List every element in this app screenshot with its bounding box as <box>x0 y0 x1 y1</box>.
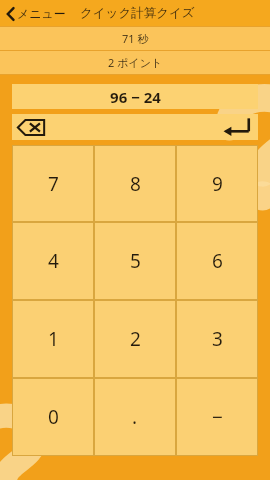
staticText: . <box>132 404 138 430</box>
button[interactable]: 9 <box>177 146 257 221</box>
staticText: クイック計算クイズ <box>80 5 195 21</box>
staticText: 96 − 24 <box>110 87 161 107</box>
button[interactable]: 6 <box>177 223 257 299</box>
staticText: 4 <box>48 248 59 274</box>
staticText: 1 <box>48 326 59 352</box>
button[interactable]: Backspace <box>15 116 47 138</box>
staticText: 8 <box>130 171 141 197</box>
button[interactable]: − <box>177 379 257 455</box>
staticText: 71 秒 <box>122 31 149 46</box>
button[interactable]: . <box>95 379 175 455</box>
staticText: 3 <box>212 326 223 352</box>
staticText: 6 <box>212 248 223 274</box>
button[interactable]: 0 <box>13 379 93 455</box>
staticText: 0 <box>48 404 59 430</box>
button[interactable]: メニュー <box>4 6 68 21</box>
staticText: 7 <box>48 171 59 197</box>
button[interactable]: 5 <box>95 223 175 299</box>
staticText: 5 <box>130 248 141 274</box>
staticText: 9 <box>212 171 223 197</box>
staticText: − <box>212 404 223 430</box>
staticText: メニュー <box>17 6 66 21</box>
button[interactable]: 4 <box>13 223 93 299</box>
staticText: 2 <box>130 326 141 352</box>
button[interactable]: 7 <box>13 146 93 221</box>
button[interactable]: 1 <box>13 301 93 377</box>
button[interactable]: Enter <box>220 115 254 139</box>
button[interactable]: 8 <box>95 146 175 221</box>
button[interactable]: 2 <box>95 301 175 377</box>
button[interactable]: 3 <box>177 301 257 377</box>
staticText: 2 ポイント <box>108 55 163 70</box>
